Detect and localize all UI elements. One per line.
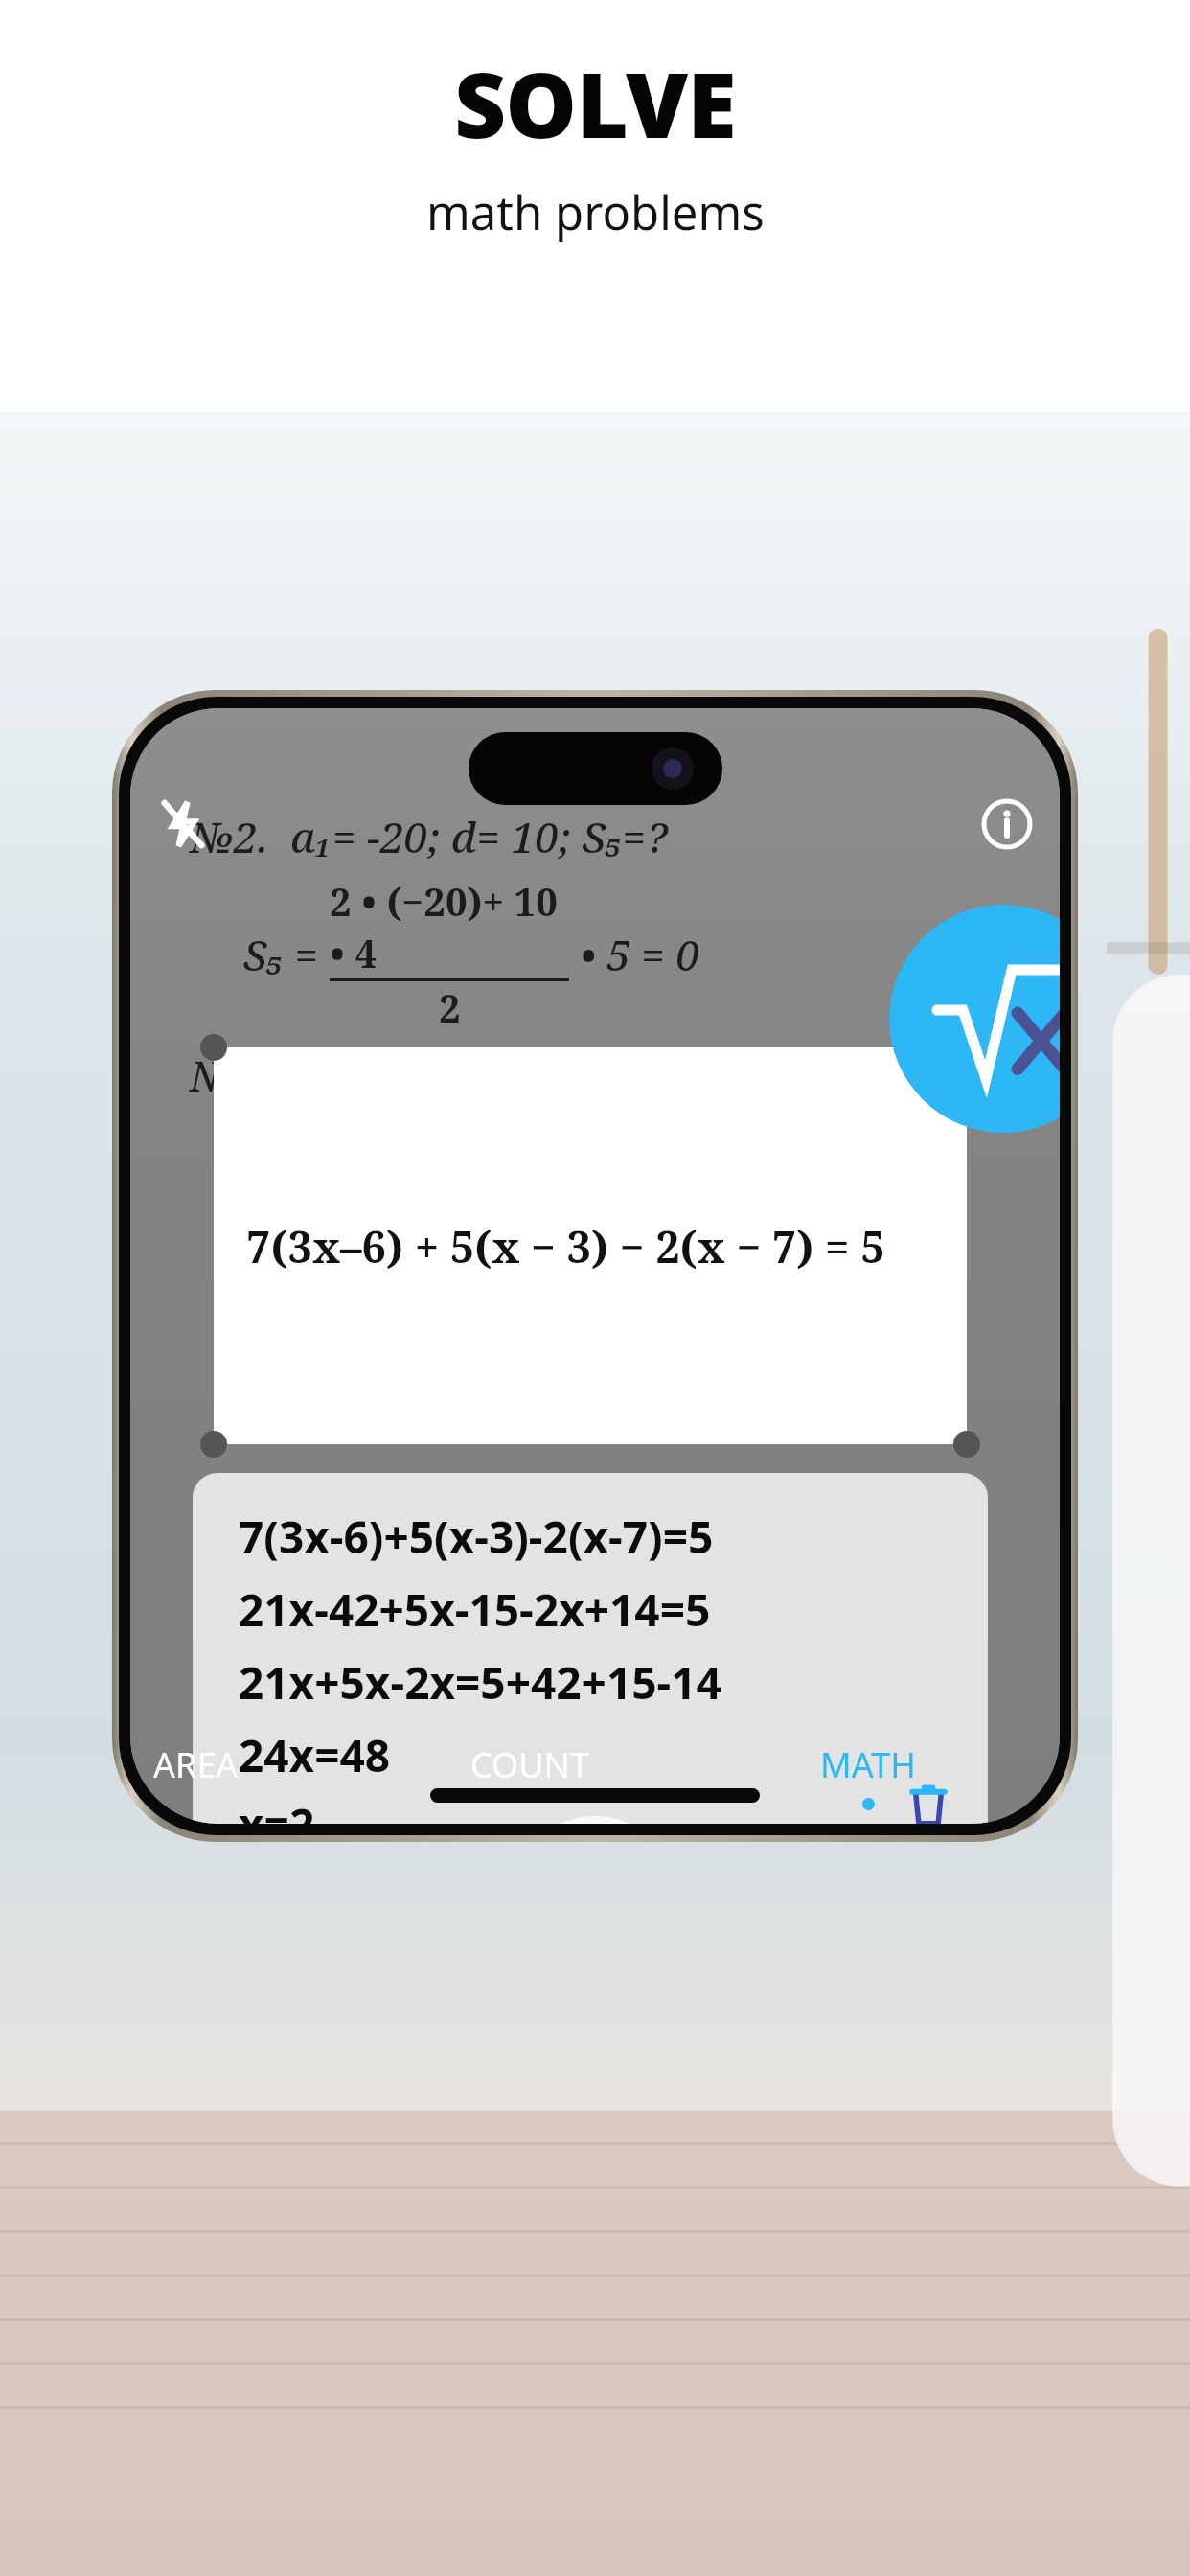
button[interactable]: AREA xyxy=(144,1736,248,1816)
staticText: S₅ = xyxy=(243,926,330,983)
button[interactable]: Capture xyxy=(511,1815,679,1824)
staticText: SOLVE xyxy=(454,42,736,165)
button[interactable]: Flash off xyxy=(151,793,215,856)
button[interactable]: Delete xyxy=(898,1774,959,1824)
staticText: math problems xyxy=(426,180,765,244)
staticText: 2 xyxy=(439,981,461,1033)
staticText: COUNT xyxy=(470,1741,589,1788)
staticText: 21x+5x-2x=5+42+15-14 xyxy=(239,1652,721,1713)
staticText: AREA xyxy=(153,1741,239,1788)
staticText: 7(3x-6)+5(x-3)-2(x-7)=5 xyxy=(239,1506,714,1567)
button[interactable]: Math solver xyxy=(889,905,1060,1133)
staticText: 2 • (−20)+ 10 • 4 xyxy=(330,875,569,978)
staticText: MATH xyxy=(820,1741,916,1788)
staticText: x=2 xyxy=(239,1794,315,1824)
staticText: 24x=48 xyxy=(239,1725,391,1785)
staticText: №3. b₁= 1; q= -2; S₅=? xyxy=(190,1046,619,1104)
button[interactable]: MATH xyxy=(811,1736,926,1816)
button[interactable]: Info xyxy=(975,793,1039,856)
button[interactable]: COUNT xyxy=(461,1736,599,1816)
staticText: 7(3x–6) + 5(x − 3) − 2(x − 7) = 5 xyxy=(246,1217,885,1276)
staticText: 21x-42+5x-15-2x+14=5 xyxy=(239,1579,711,1640)
staticText: №2. a₁= -20; d= 10; S₅=? xyxy=(190,808,668,865)
button[interactable]: 7(3x-6)+5(x-3)-2(x-7)=5 xyxy=(193,1473,988,1824)
staticText: • 5 = 0 xyxy=(569,926,699,983)
